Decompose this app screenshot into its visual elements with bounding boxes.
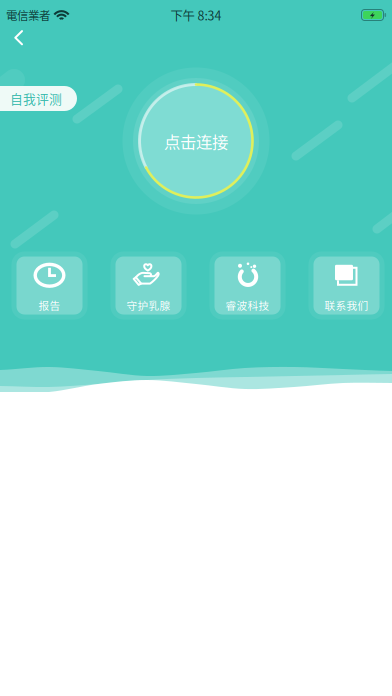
staticText: 联系我们 (324, 297, 368, 313)
staticText: 守护乳腺 (126, 297, 170, 313)
button[interactable]: Back (2, 21, 36, 55)
staticText: 报告 (38, 297, 60, 313)
button[interactable]: 自我评测 (0, 86, 77, 111)
staticText: 電信業者 (6, 7, 50, 23)
staticText: 下午 8:34 (170, 6, 221, 24)
button[interactable]: 守护乳腺 (110, 251, 186, 319)
staticText: 点击连接 (164, 129, 228, 153)
staticText: 睿波科技 (225, 297, 269, 313)
button[interactable]: 联系我们 (308, 251, 384, 319)
staticText: 自我评测 (10, 89, 62, 108)
button[interactable]: 报告 (11, 251, 87, 319)
button[interactable]: 睿波科技 (209, 251, 285, 319)
